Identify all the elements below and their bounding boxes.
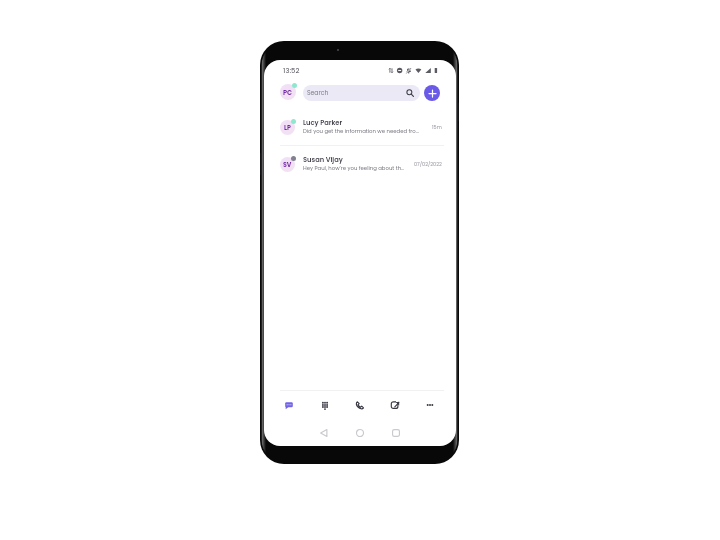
button[interactable]: Dialpad <box>307 394 342 416</box>
staticText: Susan Vijay <box>303 155 343 164</box>
staticText: LP <box>284 123 291 132</box>
button[interactable]: Messages <box>271 394 307 416</box>
staticText: Hey Paul, how’re you feeling about th… <box>303 164 405 171</box>
staticText: Search <box>307 89 329 98</box>
button[interactable]: Recents <box>378 423 414 443</box>
button[interactable]: Back <box>306 423 342 443</box>
button[interactable]: Calls <box>342 394 377 416</box>
button[interactable]: SV <box>264 148 456 180</box>
button[interactable]: More <box>412 394 447 416</box>
staticText: SV <box>283 160 292 169</box>
staticText: Lucy Parker <box>303 118 343 127</box>
button[interactable]: Contacts <box>377 394 412 416</box>
button[interactable]: Home <box>342 423 378 443</box>
button[interactable]: Search <box>303 85 420 101</box>
staticText: 13:52 <box>283 66 300 76</box>
staticText: Did you get the information we needed fr… <box>303 127 419 134</box>
button[interactable]: LP <box>264 111 456 143</box>
staticText: 15m <box>432 124 442 131</box>
staticText: PC <box>283 88 293 97</box>
staticText: 07/02/2022 <box>414 161 442 168</box>
button[interactable]: New chat <box>424 85 440 101</box>
